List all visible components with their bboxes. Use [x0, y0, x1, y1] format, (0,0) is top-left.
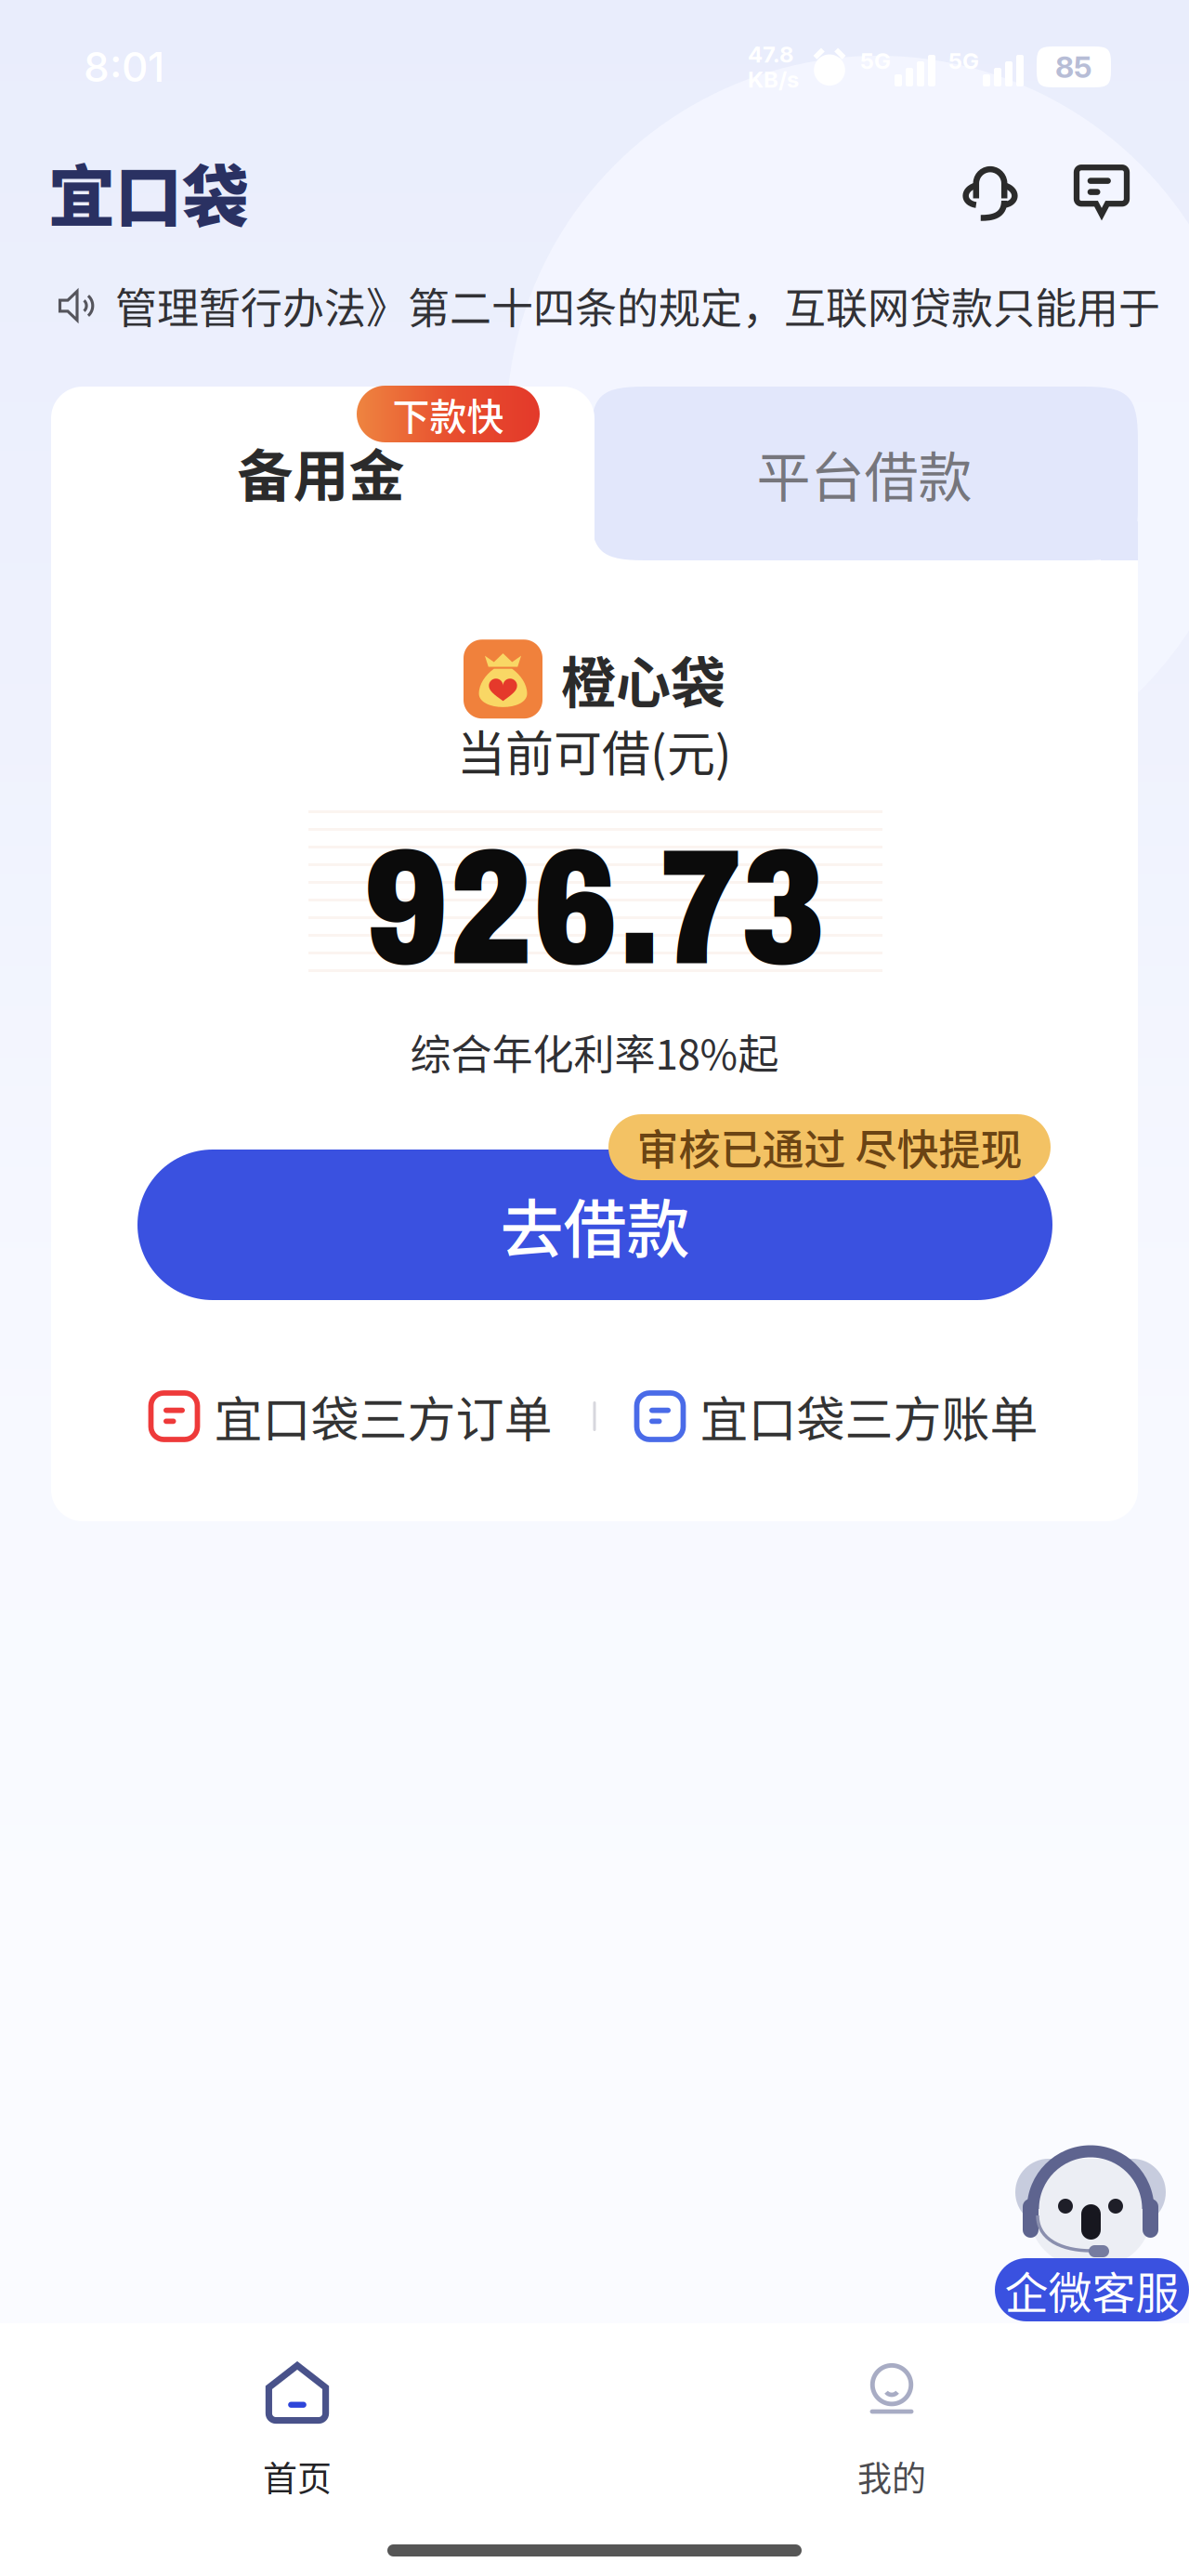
staticText: 5G	[948, 47, 979, 74]
staticText: 去借款	[500, 1179, 690, 1271]
button[interactable]: 我的	[594, 2342, 1189, 2509]
staticText: 备用金	[237, 432, 405, 513]
staticText: 下款快	[392, 387, 504, 441]
button[interactable]: 平台借款	[591, 387, 1138, 560]
staticText: 平台借款	[757, 434, 972, 513]
button[interactable]: 去借款	[137, 1150, 1052, 1300]
staticText: 47.8	[748, 41, 793, 68]
button[interactable]: 管理暂行办法》第二十四条的规定，互联网贷款只能用于	[58, 271, 1160, 340]
staticText: 宜口袋三方订单	[214, 1381, 552, 1451]
staticText: 综合年化利率18%起	[410, 1022, 779, 1081]
staticText: 橙心袋	[561, 639, 725, 719]
staticText: 926.73	[364, 820, 825, 998]
button[interactable]: 在线客服	[946, 147, 1035, 236]
staticText: 首页	[263, 2451, 332, 2501]
staticText: 审核已通过 尽快提现	[637, 1117, 1022, 1178]
staticText: 当前可借(元)	[457, 716, 732, 786]
button[interactable]: 首页	[0, 2342, 594, 2509]
staticText: 管理暂行办法》第二十四条的规定，互联网贷款只能用于	[115, 275, 1160, 336]
staticText: 8:01	[84, 42, 164, 92]
button[interactable]: 消息	[1057, 147, 1146, 236]
button[interactable]: 企微客服	[995, 2258, 1189, 2321]
button[interactable]: 宜口袋三方订单	[151, 1381, 552, 1452]
staticText: 我的	[857, 2451, 926, 2501]
staticText: 85	[1055, 49, 1092, 85]
button[interactable]: 备用金	[182, 437, 460, 507]
staticText: 宜口袋	[48, 143, 249, 240]
staticText: 5G	[860, 47, 891, 74]
staticText: KB/s	[748, 66, 799, 93]
button[interactable]: 宜口袋三方账单	[637, 1381, 1038, 1452]
staticText: 宜口袋三方账单	[700, 1381, 1038, 1451]
staticText: 企微客服	[1005, 2258, 1179, 2321]
